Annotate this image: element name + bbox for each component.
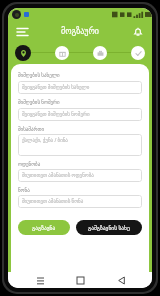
staticText: წონა xyxy=(18,187,30,193)
button[interactable]: Step 4 xyxy=(131,46,145,60)
button[interactable]: მიუთითეთ ამანათის წონა xyxy=(18,195,142,208)
staticText: მიმღების სახელი xyxy=(18,72,60,79)
button[interactable]: შეიყვანეთ მიმღების სახელი xyxy=(18,81,142,94)
staticText: მისამართი xyxy=(18,126,45,132)
button[interactable]: Notifications xyxy=(128,22,147,41)
staticText: მიუთითეთ ამანათის ოდენობა xyxy=(22,172,94,179)
staticText: ოდენობა xyxy=(18,161,41,167)
button[interactable]: ქალაქი, ქუჩა / ბინა xyxy=(18,134,142,156)
staticText: ქალაქი, ქუჩა / ბინა xyxy=(22,137,68,144)
button[interactable]: Back xyxy=(112,272,130,288)
button[interactable]: Step 3 xyxy=(93,46,107,60)
staticText: გაგზავნა xyxy=(32,225,56,231)
staticText: შეიყვანეთ მიმღების სახელი xyxy=(22,84,90,91)
button[interactable]: Home xyxy=(71,272,89,288)
button[interactable]: Recents xyxy=(31,272,49,288)
staticText: მიუთითეთ ამანათის წონა xyxy=(22,198,84,205)
button[interactable]: შეიყვანეთ მიმღების ნომერი xyxy=(18,108,142,121)
button[interactable]: გაგზავნა xyxy=(18,220,70,235)
button[interactable]: Menu xyxy=(13,22,32,41)
staticText: მოგზაური xyxy=(61,27,99,36)
staticText: გამგზავნის სახე xyxy=(88,224,130,231)
staticText: მიმღების ნომერი xyxy=(18,99,60,106)
button[interactable]: Step 2 xyxy=(55,46,69,60)
button[interactable]: მიუთითეთ ამანათის ოდენობა xyxy=(18,169,142,182)
button[interactable]: გამგზავნის სახე xyxy=(76,220,142,235)
staticText: შეიყვანეთ მიმღების ნომერი xyxy=(22,111,90,118)
button[interactable]: Step 1 xyxy=(15,45,31,61)
